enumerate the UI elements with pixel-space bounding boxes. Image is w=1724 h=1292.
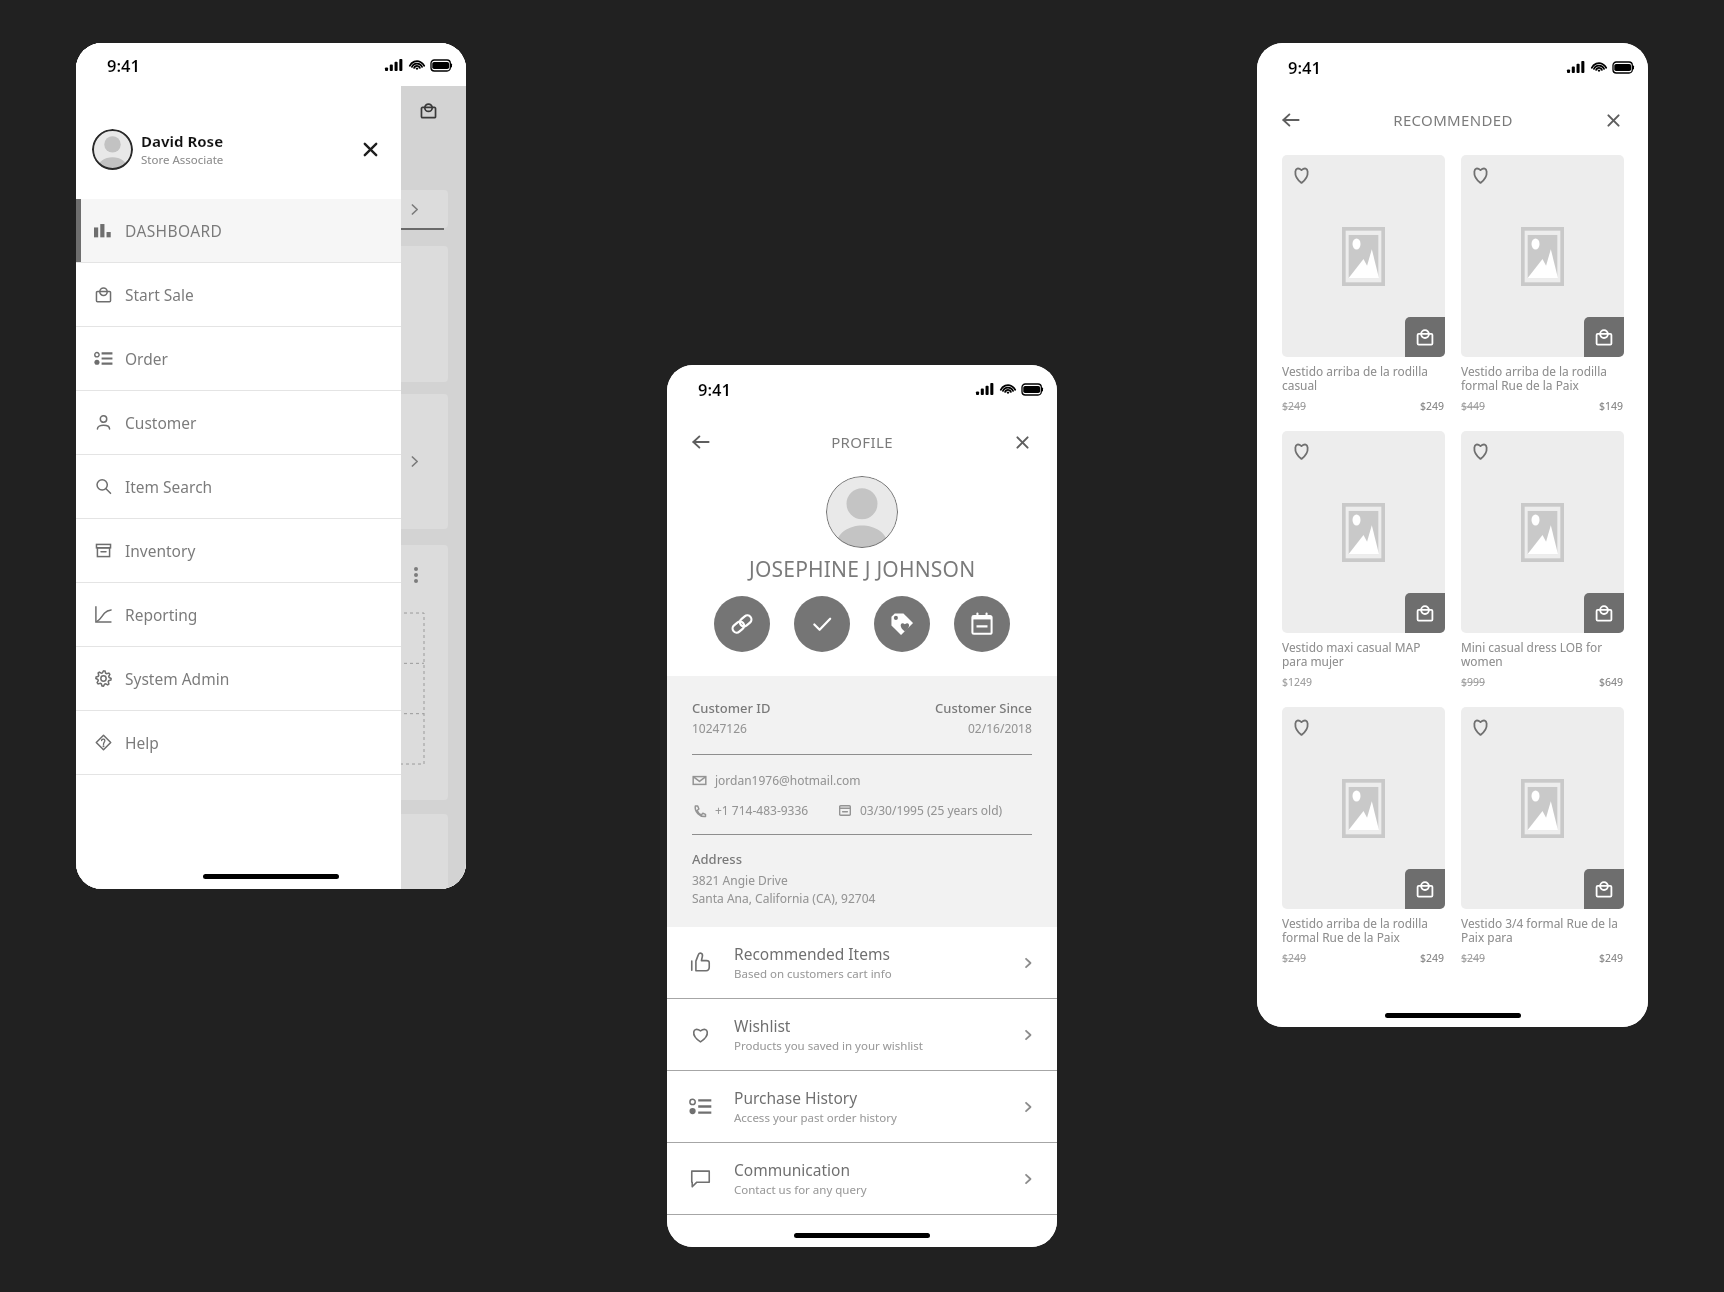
staticText: Purchase History bbox=[734, 1087, 858, 1108]
staticText: Mini casual dress LOB for women bbox=[1461, 639, 1624, 670]
button[interactable]: Back bbox=[1275, 104, 1307, 136]
button[interactable]: David Rose bbox=[76, 128, 401, 170]
staticText: PROFILE bbox=[831, 432, 893, 452]
button[interactable]: Add to bag bbox=[1584, 317, 1624, 357]
staticText: Recommended Items bbox=[734, 943, 890, 964]
staticText: $249 bbox=[1420, 951, 1445, 965]
staticText: Help bbox=[125, 732, 159, 753]
button[interactable]: Add to wishlist bbox=[1465, 434, 1495, 464]
button[interactable]: Add to wishlist bbox=[1461, 155, 1624, 413]
button[interactable]: Close bbox=[1006, 426, 1038, 458]
button[interactable]: Add to wishlist bbox=[1465, 158, 1495, 188]
staticText: Vestido arriba de la rodilla formal Rue … bbox=[1282, 915, 1445, 946]
staticText: Order bbox=[125, 348, 168, 369]
button[interactable]: Add to wishlist bbox=[1282, 155, 1445, 413]
button[interactable]: Add to wishlist bbox=[1286, 434, 1316, 464]
staticText: Customer ID bbox=[692, 699, 771, 717]
staticText: $249 bbox=[1282, 951, 1307, 965]
button[interactable]: Help bbox=[76, 711, 401, 774]
button[interactable]: Add to bag bbox=[1584, 869, 1624, 909]
staticText: 9:41 bbox=[1288, 56, 1321, 78]
button[interactable]: Recommended Items bbox=[667, 927, 1057, 998]
staticText: DASHBOARD bbox=[125, 220, 223, 241]
staticText: RECOMMENDED bbox=[1393, 110, 1513, 130]
staticText: Address bbox=[692, 850, 742, 868]
button[interactable]: Item Search bbox=[76, 455, 401, 518]
staticText: 9:41 bbox=[107, 54, 140, 76]
staticText: Store Associate bbox=[141, 152, 224, 168]
staticText: Vestido 3/4 formal Rue de la Paix para bbox=[1461, 915, 1624, 946]
button[interactable]: Add to wishlist bbox=[1461, 431, 1624, 689]
staticText: Vestido arriba de la rodilla formal Rue … bbox=[1461, 363, 1624, 394]
staticText: 3821 Angie Drive bbox=[692, 872, 788, 888]
staticText: System Admin bbox=[125, 668, 230, 689]
button[interactable]: Add to wishlist bbox=[1461, 707, 1624, 965]
staticText: $149 bbox=[1599, 399, 1624, 413]
staticText: 9:41 bbox=[698, 378, 731, 400]
button[interactable]: Close bbox=[353, 132, 387, 166]
button[interactable]: Close bbox=[1597, 104, 1629, 136]
staticText: David Rose bbox=[141, 131, 224, 151]
staticText: Access your past order history bbox=[734, 1110, 897, 1126]
staticText: $249 bbox=[1282, 399, 1307, 413]
staticText: $999 bbox=[1461, 675, 1486, 689]
button[interactable]: Offers bbox=[874, 596, 930, 652]
staticText: $649 bbox=[1599, 675, 1624, 689]
button[interactable]: Reporting bbox=[76, 583, 401, 646]
button[interactable]: Approve bbox=[794, 596, 850, 652]
button[interactable]: Add to wishlist bbox=[1282, 431, 1445, 689]
staticText: Vestido arriba de la rodilla casual bbox=[1282, 363, 1445, 394]
staticText: 02/16/2018 bbox=[968, 720, 1032, 736]
button[interactable]: Add to wishlist bbox=[1286, 710, 1316, 740]
button[interactable]: Add to wishlist bbox=[1465, 710, 1495, 740]
button[interactable]: Customer bbox=[76, 391, 401, 454]
staticText: Communication bbox=[734, 1159, 851, 1180]
button[interactable]: Back bbox=[685, 426, 717, 458]
staticText: Contact us for any query bbox=[734, 1182, 867, 1198]
button[interactable]: Communication bbox=[667, 1143, 1057, 1214]
staticText: Based on customers cart info bbox=[734, 966, 892, 982]
button[interactable]: Wishlist bbox=[667, 999, 1057, 1070]
button[interactable]: Inventory bbox=[76, 519, 401, 582]
staticText: 03/30/1995 (25 years old) bbox=[860, 802, 1003, 818]
button[interactable]: Start Sale bbox=[76, 263, 401, 326]
button[interactable]: Order bbox=[76, 327, 401, 390]
staticText: jordan1976@hotmail.com bbox=[715, 772, 861, 788]
staticText: Santa Ana, California (CA), 92704 bbox=[692, 890, 876, 906]
staticText: $449 bbox=[1461, 399, 1486, 413]
staticText: Start Sale bbox=[125, 284, 194, 305]
button[interactable]: Purchase History bbox=[667, 1071, 1057, 1142]
button[interactable]: Add to wishlist bbox=[1282, 707, 1445, 965]
staticText: Customer bbox=[125, 412, 197, 433]
button[interactable]: Add to bag bbox=[1405, 317, 1445, 357]
staticText: 10247126 bbox=[692, 720, 747, 736]
staticText: Vestido maxi casual MAP para mujer bbox=[1282, 639, 1445, 670]
button[interactable]: Share link bbox=[714, 596, 770, 652]
staticText: JOSEPHINE J JOHNSON bbox=[749, 555, 976, 584]
button[interactable]: Add to wishlist bbox=[1286, 158, 1316, 188]
staticText: Products you saved in your wishlist bbox=[734, 1038, 924, 1054]
staticText: Inventory bbox=[125, 540, 196, 561]
button[interactable]: DASHBOARD bbox=[76, 199, 401, 262]
staticText: $1249 bbox=[1282, 675, 1313, 689]
staticText: $249 bbox=[1461, 951, 1486, 965]
staticText: $249 bbox=[1599, 951, 1624, 965]
staticText: Wishlist bbox=[734, 1015, 791, 1036]
button[interactable]: Add to bag bbox=[1405, 593, 1445, 633]
staticText: +1 714-483-9336 bbox=[715, 802, 809, 818]
staticText: $249 bbox=[1420, 399, 1445, 413]
staticText: Customer Since bbox=[935, 699, 1032, 717]
button[interactable]: Add to bag bbox=[1405, 869, 1445, 909]
button[interactable]: Add to bag bbox=[1584, 593, 1624, 633]
button[interactable]: Appointments bbox=[954, 596, 1010, 652]
staticText: Item Search bbox=[125, 476, 213, 497]
button[interactable]: System Admin bbox=[76, 647, 401, 710]
staticText: Reporting bbox=[125, 604, 198, 625]
